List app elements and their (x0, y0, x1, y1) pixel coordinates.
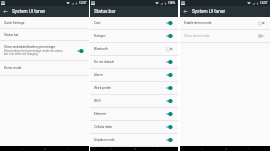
button[interactable]: Quick Settings (0, 17, 89, 28)
button[interactable]: Back (199, 146, 204, 151)
button[interactable]: Work profile (90, 82, 178, 94)
button[interactable]: Airplane mode (90, 134, 178, 146)
button[interactable]: Toggle (258, 20, 265, 26)
button[interactable]: Toggle (166, 137, 173, 143)
button[interactable]: Navigate up (180, 6, 191, 17)
button[interactable]: Toggle (166, 111, 173, 117)
staticText: System UI tuner (192, 9, 225, 15)
button[interactable]: Demo mode (0, 61, 89, 75)
button[interactable]: Home (223, 146, 228, 151)
staticText: Do not disturb (94, 60, 114, 64)
staticText: Demo mode (4, 66, 22, 70)
staticText: Enable demo mode (184, 21, 212, 25)
button[interactable]: Cast (90, 17, 178, 29)
staticText: Status bar (94, 9, 116, 15)
staticText: Cellular data (94, 125, 112, 129)
button[interactable]: Bluetooth (90, 43, 178, 55)
button[interactable]: Alarm (90, 69, 178, 81)
button[interactable]: Home (42, 146, 47, 151)
button[interactable]: Toggle (166, 33, 173, 39)
button[interactable]: Ethernet (90, 108, 178, 120)
staticText: Wi-Fi (94, 99, 102, 103)
button[interactable]: Show demo mode (180, 30, 270, 42)
button[interactable]: Home (132, 147, 137, 151)
staticText: Show demo mode (184, 34, 210, 38)
staticText: 100% (168, 1, 176, 5)
staticText: Airplane mode (94, 138, 115, 142)
button[interactable]: Show embedded battery percentage (0, 41, 89, 60)
staticText: Ethernet (94, 112, 106, 116)
button[interactable]: Back (108, 147, 113, 151)
button[interactable]: Wi-Fi (90, 95, 178, 107)
button[interactable]: Toggle (166, 124, 173, 130)
staticText: 12:37 (260, 1, 268, 5)
button[interactable]: Recent apps (246, 146, 251, 151)
button[interactable]: Toggle (166, 85, 173, 91)
button[interactable]: Toggle (166, 46, 173, 52)
button[interactable]: Status bar (0, 29, 89, 40)
staticText: Bluetooth (94, 47, 108, 51)
button[interactable]: Toggle (166, 98, 173, 104)
button[interactable]: Back (19, 146, 24, 151)
staticText: Cast (94, 21, 101, 25)
button[interactable]: Recent apps (66, 146, 71, 151)
staticText: Alarm (94, 73, 103, 77)
button[interactable]: Toggle (166, 72, 173, 78)
button[interactable]: Enable demo mode (180, 17, 270, 29)
button[interactable]: Toggle (166, 59, 173, 65)
staticText: Status bar (4, 33, 19, 37)
staticText: Show embedded battery percentage (4, 45, 56, 49)
staticText: Hotspot (94, 34, 106, 38)
button[interactable]: Recent apps (155, 147, 160, 151)
button[interactable]: Hotspot (90, 30, 178, 42)
button[interactable]: Do not disturb (90, 56, 178, 68)
button[interactable]: Toggle (77, 48, 84, 54)
button[interactable]: Toggle (258, 33, 265, 39)
staticText: Show battery level percentage inside the… (4, 49, 66, 56)
staticText: System UI tuner (12, 9, 45, 15)
button[interactable]: Toggle (166, 20, 173, 26)
button[interactable]: Navigate up (0, 6, 11, 17)
staticText: Quick Settings (4, 21, 25, 25)
button[interactable]: Cellular data (90, 121, 178, 133)
staticText: 12:37 (79, 1, 87, 5)
staticText: Work profile (94, 86, 111, 90)
